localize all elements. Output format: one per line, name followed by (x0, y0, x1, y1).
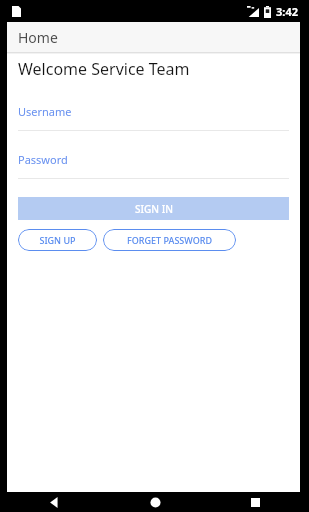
button[interactable]: Back (4, 492, 105, 512)
button[interactable]: Recent apps (205, 492, 305, 512)
staticText: 3:42 (276, 4, 298, 19)
button[interactable]: FORGET PASSWORD (103, 229, 236, 251)
staticText: Welcome Service Team (18, 58, 190, 80)
staticText: SIGN IN (135, 202, 173, 216)
button[interactable]: SIGN IN (18, 197, 289, 220)
button[interactable]: SIGN UP (18, 229, 97, 251)
staticText: Password (18, 152, 68, 167)
button[interactable]: Home (105, 492, 205, 512)
button[interactable]: Password (18, 152, 289, 179)
staticText: Home (18, 28, 58, 47)
staticText: Username (18, 104, 72, 119)
staticText: FORGET PASSWORD (127, 234, 212, 246)
button[interactable]: Username (18, 104, 289, 131)
staticText: SIGN UP (39, 234, 76, 246)
